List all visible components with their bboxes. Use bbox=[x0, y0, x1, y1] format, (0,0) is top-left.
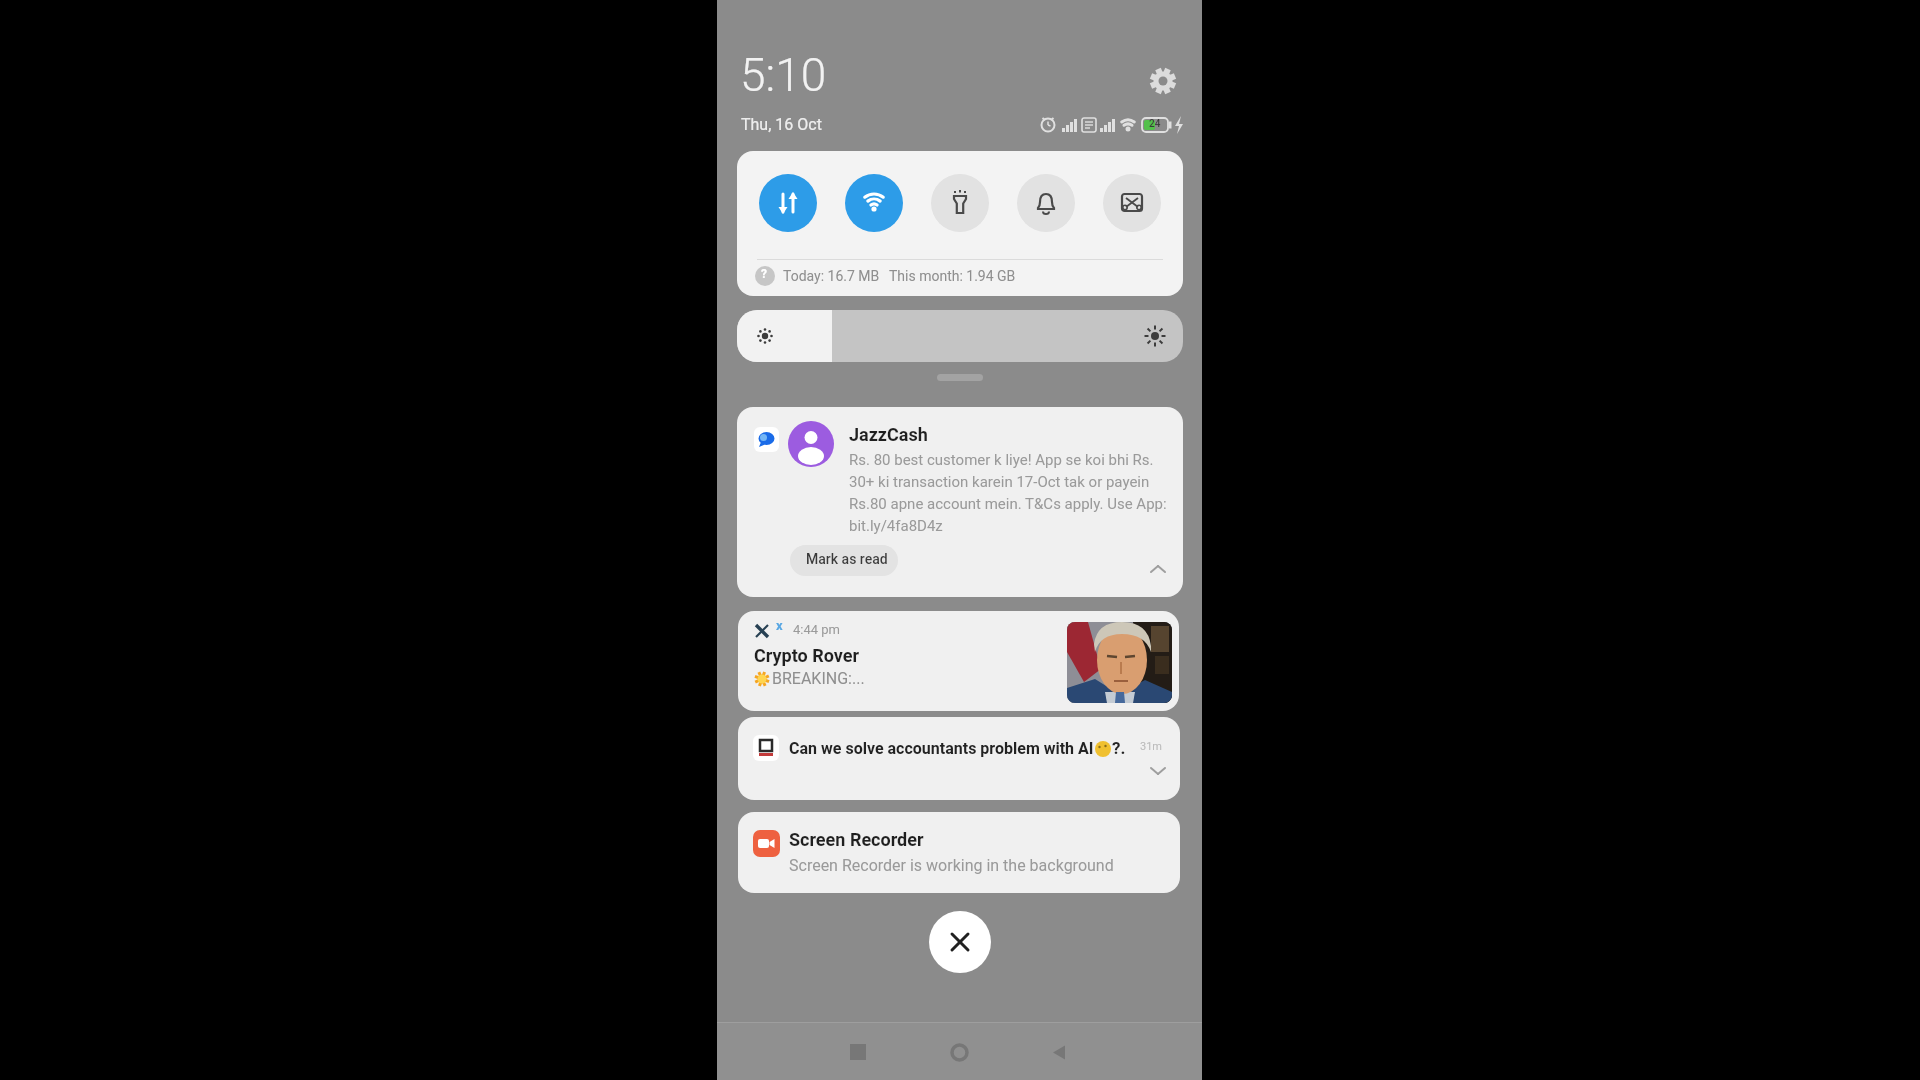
button[interactable] bbox=[951, 1044, 968, 1061]
staticText: Rs.80 apne account mein. T&Cs apply. Use… bbox=[849, 495, 1167, 513]
staticText: BREAKING:... bbox=[772, 669, 865, 688]
button[interactable] bbox=[737, 407, 1183, 597]
staticText: ?. bbox=[1112, 738, 1126, 758]
staticText: Crypto Rover bbox=[754, 645, 860, 666]
staticText: ? bbox=[761, 267, 767, 281]
staticText: Today: 16.7 MB bbox=[783, 268, 880, 284]
staticText: 24 bbox=[1149, 118, 1161, 130]
button[interactable] bbox=[931, 174, 989, 232]
button[interactable] bbox=[738, 812, 1180, 893]
staticText: 4:44 pm bbox=[793, 622, 840, 637]
staticText: Can we solve accountants problem with AI bbox=[789, 739, 1094, 758]
staticText: JazzCash bbox=[849, 424, 928, 445]
button[interactable] bbox=[738, 611, 1179, 711]
staticText: bit.ly/4fa8D4z bbox=[849, 517, 943, 535]
button[interactable] bbox=[1148, 66, 1178, 96]
staticText: 5:10 bbox=[740, 48, 827, 102]
button[interactable] bbox=[1103, 174, 1161, 232]
staticText: Thu, 16 Oct bbox=[741, 115, 822, 134]
staticText: Screen Recorder bbox=[789, 829, 924, 850]
button[interactable] bbox=[738, 717, 1180, 800]
staticText: Mark as read bbox=[806, 551, 888, 567]
button[interactable] bbox=[759, 174, 817, 232]
button[interactable] bbox=[1017, 174, 1075, 232]
staticText: x bbox=[776, 618, 783, 633]
staticText: 31m bbox=[1140, 740, 1163, 753]
staticText: Rs. 80 best customer k liye! App se koi … bbox=[849, 451, 1154, 469]
button[interactable] bbox=[790, 545, 898, 576]
staticText: Screen Recorder is working in the backgr… bbox=[789, 856, 1114, 875]
button[interactable] bbox=[845, 174, 903, 232]
button[interactable] bbox=[1051, 1044, 1068, 1061]
button[interactable] bbox=[737, 310, 1183, 362]
staticText: 30+ ki transaction karein 17-Oct tak or … bbox=[849, 473, 1150, 491]
button[interactable] bbox=[929, 911, 991, 973]
staticText: This month: 1.94 GB bbox=[889, 268, 1016, 284]
